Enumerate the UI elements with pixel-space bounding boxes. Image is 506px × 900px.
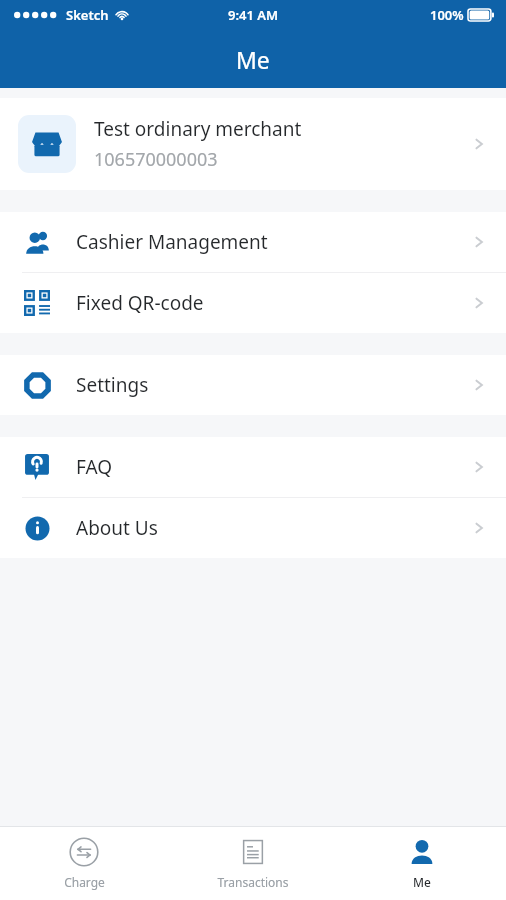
other: Transactions bbox=[240, 839, 266, 865]
staticText: 9:41 AM bbox=[228, 6, 279, 24]
staticText: About Us bbox=[76, 515, 470, 541]
button[interactable]: FAQ bbox=[0, 437, 506, 497]
button[interactable]: Charge bbox=[0, 827, 168, 900]
staticText: Transactions bbox=[217, 874, 289, 890]
other: Me bbox=[409, 839, 435, 865]
button[interactable]: Me bbox=[337, 827, 506, 900]
staticText: Cashier Management bbox=[76, 229, 470, 255]
staticText: Me bbox=[413, 874, 431, 890]
button[interactable]: Test ordinary merchant bbox=[0, 98, 506, 190]
staticText: Sketch bbox=[66, 6, 109, 24]
staticText: Settings bbox=[76, 372, 470, 398]
staticText: Test ordinary merchant bbox=[94, 116, 302, 142]
button[interactable]: Transactions bbox=[168, 827, 337, 900]
button[interactable]: About Us bbox=[0, 498, 506, 558]
button[interactable]: Settings bbox=[0, 355, 506, 415]
staticText: 100% bbox=[430, 6, 464, 24]
button[interactable]: Fixed QR-code bbox=[0, 273, 506, 333]
staticText: Me bbox=[236, 44, 270, 75]
staticText: 106570000003 bbox=[94, 147, 218, 172]
other: Charge bbox=[69, 837, 99, 867]
staticText: FAQ bbox=[76, 454, 470, 480]
button[interactable]: Cashier Management bbox=[0, 212, 506, 272]
staticText: Charge bbox=[64, 874, 105, 890]
staticText: Fixed QR-code bbox=[76, 290, 470, 316]
